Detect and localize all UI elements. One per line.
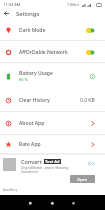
staticText: Open [77, 177, 88, 182]
button[interactable]: Toggle [86, 49, 95, 56]
staticText: Rate App [19, 141, 41, 148]
button[interactable]: AffOrDable Network [0, 41, 105, 63]
staticText: AutoBerry [3, 188, 18, 192]
staticText: 11:04 AM [3, 2, 21, 7]
other: Info [90, 74, 95, 79]
button[interactable]: Recent apps [24, 195, 37, 210]
staticText: 0.0 KB [80, 97, 95, 104]
button[interactable]: Toggle [86, 27, 95, 34]
button[interactable]: Rate App [0, 135, 105, 153]
staticText: Convert [21, 158, 42, 165]
button[interactable]: Dark Mode [0, 19, 105, 41]
button[interactable]: Clear History [0, 88, 105, 112]
other: Open [91, 142, 95, 147]
button[interactable]: Open [70, 175, 95, 183]
staticText: Clear History [19, 97, 50, 104]
button[interactable]: Home [46, 195, 59, 210]
staticText: Battery Usage [19, 70, 53, 77]
staticText: Dark Mode [19, 27, 46, 34]
staticText: 7.8Kb/s [67, 2, 80, 7]
staticText: OriginalMarket - photos Warranty [21, 166, 69, 170]
staticText: 65 % [19, 77, 28, 82]
button[interactable]: Back [67, 195, 80, 210]
other: Open [91, 121, 95, 126]
staticText: Settings [16, 10, 40, 18]
button[interactable]: Back [0, 8, 13, 19]
button[interactable]: About App [0, 112, 105, 135]
button[interactable]: Battery Usage [0, 63, 105, 89]
staticText: AffOrDable Network [19, 49, 68, 56]
staticText: Test Ad [45, 159, 60, 164]
staticText: Guaranteed [21, 170, 38, 174]
staticText: About App [19, 120, 45, 127]
